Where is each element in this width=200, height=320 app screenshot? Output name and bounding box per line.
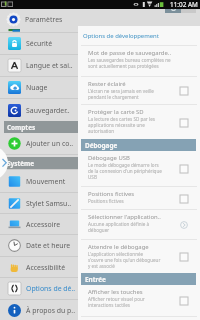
staticText: Attendre le débogage — [88, 243, 149, 251]
button[interactable]: Langue et sai.. — [0, 55, 78, 76]
staticText: Mouvement — [26, 177, 66, 186]
staticText: Ajouter un co.. — [26, 139, 74, 148]
staticText: Stylet Samsu.. — [26, 199, 72, 208]
staticText: USB — [88, 174, 97, 180]
staticText: Options de dé.. — [26, 284, 76, 293]
button[interactable]: Sélectionner l'application.. — [78, 210, 200, 239]
staticText: interactions tactiles — [88, 302, 130, 308]
staticText: À propos du p.. — [26, 306, 76, 315]
staticText: Le mode débogage démarre lors — [88, 162, 159, 168]
staticText: Date et heure — [26, 241, 71, 250]
button[interactable]: Positions fictives — [78, 187, 200, 209]
button[interactable]: Accessoire — [0, 214, 78, 234]
staticText: Positions fictives — [88, 190, 135, 198]
staticText: Mot de passe de sauvegarde.. — [88, 49, 172, 57]
button[interactable]: Mot de passe de sauvegarde.. — [78, 46, 200, 76]
staticText: Sécurité — [26, 39, 53, 48]
staticText: Afficher retour visuel pour — [88, 296, 145, 302]
button[interactable]: Date et heure — [0, 235, 78, 256]
staticText: Rester éclairé — [88, 80, 126, 88]
button[interactable]: Ajouter un co.. — [0, 133, 78, 154]
staticText: déboguer — [88, 227, 110, 233]
button[interactable]: Paramètres — [0, 9, 78, 29]
staticText: Comptes — [7, 123, 36, 132]
staticText: Options de développement — [83, 32, 159, 40]
staticText: s'ouvre une fois qu'un débogueur — [88, 257, 161, 263]
staticText: applications nécessite une — [88, 122, 145, 128]
staticText: de la connexion d'un périphérique — [88, 168, 162, 174]
staticText: Paramètres — [25, 15, 63, 24]
staticText: sont actuellement pas protégées — [88, 63, 159, 69]
staticText: autorisation — [88, 128, 115, 134]
staticText: Accessibilité — [26, 263, 66, 272]
staticText: 11:02 AM — [170, 0, 198, 9]
button[interactable]: Protéger la carte SD — [78, 105, 200, 139]
staticText: Afficher les touches — [88, 288, 143, 296]
staticText: L'écran ne sera jamais en veille — [88, 88, 154, 94]
button[interactable]: Attendre le débogage — [78, 240, 200, 273]
staticText: Nuage — [26, 83, 48, 92]
button[interactable]: Afficher les touches — [78, 285, 200, 316]
staticText: Sauvegarder.. — [26, 106, 70, 115]
staticText: Aucune application définie à — [88, 221, 150, 227]
button[interactable]: Débogage USB — [78, 151, 200, 186]
staticText: Sélectionner l'application.. — [88, 213, 161, 221]
button[interactable]: Nuage — [0, 77, 78, 98]
staticText: La lecture des cartes SD par les — [88, 116, 155, 122]
staticText: pendant le chargement — [88, 94, 139, 100]
staticText: Protéger la carte SD — [88, 108, 144, 116]
button[interactable]: Activer les options de développement — [165, 4, 196, 13]
button[interactable]: À propos du p.. — [0, 300, 78, 320]
staticText: Les sauvegardes bureau complètes ne — [88, 57, 171, 63]
button[interactable]: Rester éclairé — [78, 77, 200, 104]
staticText: Entrée — [85, 275, 106, 284]
staticText: Système — [7, 159, 35, 168]
button[interactable]: Sauvegarder.. — [0, 99, 78, 121]
staticText: Positions fictives — [88, 198, 124, 204]
button[interactable]: Stylet Samsu.. — [0, 193, 78, 213]
staticText: Débogage USB — [88, 154, 130, 162]
staticText: Langue et sai.. — [26, 61, 73, 70]
staticText: Accessoire — [26, 220, 61, 229]
staticText: Débogage — [85, 141, 118, 150]
button[interactable]: Mouvement — [0, 170, 78, 192]
button[interactable]: Accessibilité — [0, 257, 78, 277]
staticText: y est associé — [88, 263, 115, 269]
button[interactable]: Options de dé.. — [0, 278, 78, 299]
staticText: L'application sélectionnée — [88, 251, 144, 257]
button[interactable]: Sécurité — [0, 33, 78, 54]
